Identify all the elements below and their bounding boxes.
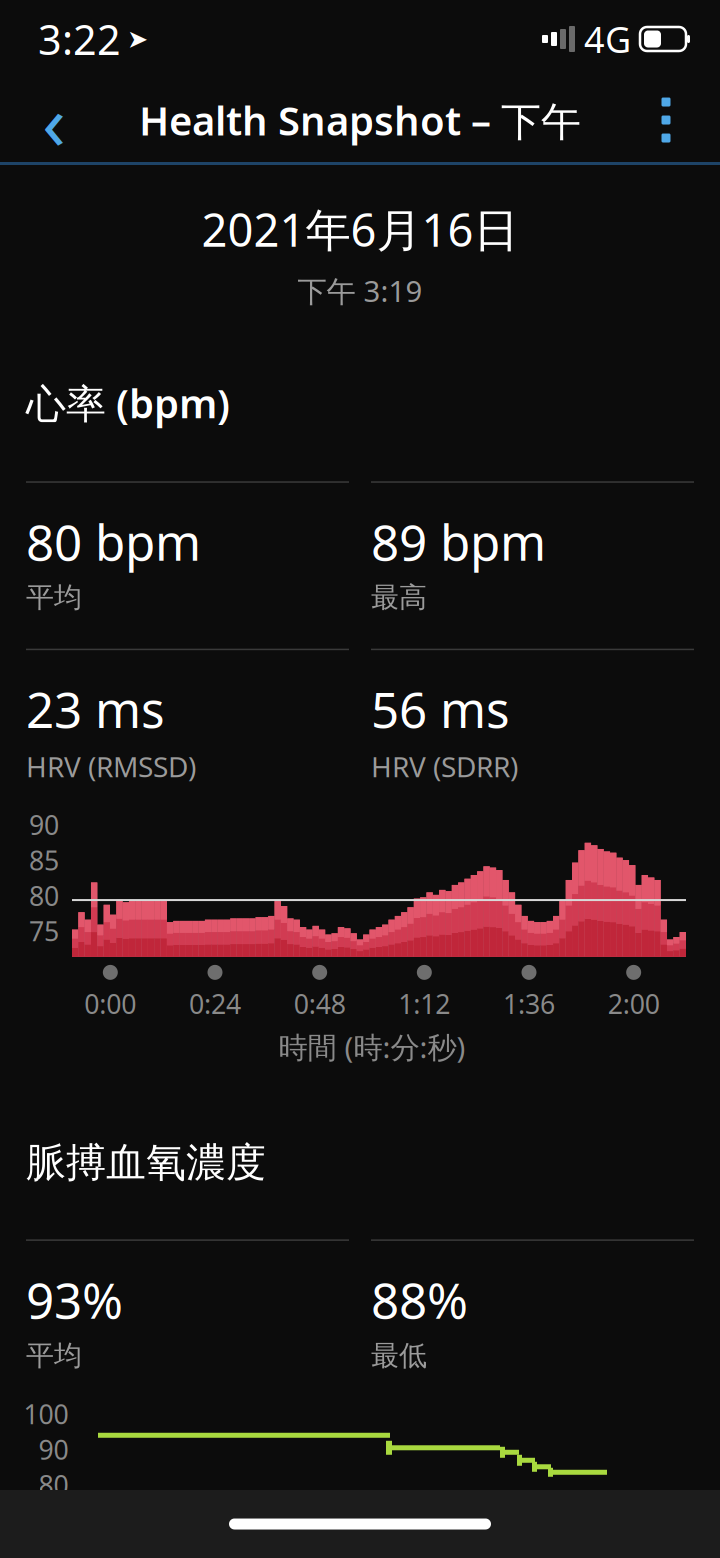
staticText: ➤: [127, 25, 148, 53]
staticText: 80: [38, 1467, 68, 1502]
staticText: 80: [29, 878, 59, 913]
staticText: 2:00: [608, 986, 660, 1021]
staticText: 100: [23, 1396, 68, 1432]
staticText: 93%: [26, 1267, 123, 1332]
staticText: 89 bpm: [371, 509, 546, 574]
staticText: 3:22: [38, 12, 121, 66]
staticText: 80 bpm: [26, 509, 201, 574]
staticText: 0:00: [84, 986, 136, 1021]
staticText: 0:24: [189, 986, 241, 1021]
staticText: 0:48: [294, 986, 346, 1021]
button[interactable]: More options: [624, 78, 708, 162]
staticText: 4G: [584, 15, 631, 63]
staticText: 1:12: [398, 986, 450, 1021]
staticText: 75: [29, 913, 59, 949]
staticText: 1:36: [503, 986, 555, 1021]
staticText: 2021年6月16日: [201, 199, 518, 259]
staticText: HRV (SDRR): [371, 748, 518, 785]
staticText: 脈搏血氧濃度: [26, 1138, 266, 1187]
staticText: 心率 (bpm): [26, 376, 230, 429]
staticText: 90: [38, 1432, 68, 1467]
staticText: 時間 (時:分:秒): [278, 1027, 465, 1066]
staticText: Health Snapshot – 下午: [139, 93, 581, 147]
staticText: 88%: [371, 1267, 468, 1332]
staticText: 下午 3:19: [297, 271, 422, 310]
staticText: 56 ms: [371, 676, 510, 742]
staticText: 最低: [371, 1338, 427, 1373]
staticText: HRV (RMSSD): [26, 748, 196, 785]
staticText: 90: [29, 807, 59, 842]
staticText: 最高: [371, 580, 427, 615]
staticText: 平均: [26, 1338, 82, 1373]
staticText: ‹: [42, 69, 66, 171]
staticText: 23 ms: [26, 676, 165, 742]
staticText: 平均: [26, 580, 82, 615]
staticText: 85: [29, 842, 59, 878]
button[interactable]: Back: [12, 78, 96, 162]
